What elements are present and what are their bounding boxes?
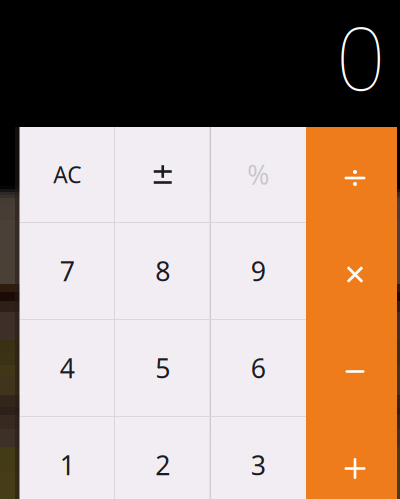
button[interactable]: % — [210, 127, 306, 222]
staticText: AC — [53, 159, 81, 189]
button[interactable]: 3 — [210, 417, 306, 499]
button[interactable]: 9 — [210, 223, 306, 319]
button[interactable]: 6 — [210, 320, 306, 416]
button[interactable]: Subtract — [306, 320, 397, 416]
button[interactable]: Multiply — [306, 223, 397, 319]
staticText: 8 — [155, 253, 170, 289]
button[interactable]: 7 — [19, 223, 115, 319]
button[interactable]: 5 — [115, 320, 210, 416]
button[interactable]: AC — [19, 127, 115, 222]
button[interactable]: Add — [306, 417, 397, 499]
staticText: 9 — [251, 253, 266, 289]
button[interactable]: Divide — [306, 127, 397, 222]
staticText: 6 — [251, 350, 266, 386]
button[interactable]: 2 — [115, 417, 210, 499]
button[interactable]: 8 — [115, 223, 210, 319]
button[interactable]: 4 — [19, 320, 115, 416]
button[interactable]: Plus minus — [115, 127, 210, 222]
staticText: 7 — [60, 253, 75, 289]
staticText: % — [247, 157, 269, 192]
staticText: 4 — [60, 350, 75, 386]
staticText: 5 — [155, 350, 170, 386]
staticText: 2 — [155, 447, 170, 483]
button[interactable]: 1 — [19, 417, 115, 499]
staticText: 3 — [251, 447, 266, 483]
staticText: 0 — [336, 0, 385, 114]
staticText: 1 — [60, 447, 75, 483]
